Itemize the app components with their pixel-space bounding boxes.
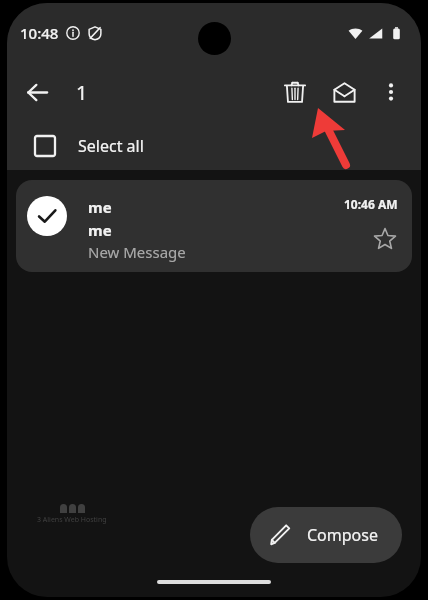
button[interactable]: Star <box>372 226 398 252</box>
staticText: New Message <box>88 242 186 262</box>
button[interactable]: Selected <box>16 180 412 272</box>
staticText: 10:46 AM <box>344 196 398 212</box>
staticText: 10:48 <box>20 23 59 43</box>
button[interactable]: Selected <box>27 196 67 236</box>
staticText: 3 Aliens Web Hosting <box>37 515 107 525</box>
button[interactable]: Select all <box>7 121 421 170</box>
staticText: me <box>88 220 112 240</box>
staticText: Compose <box>307 524 378 546</box>
button[interactable]: Compose <box>250 507 402 563</box>
staticText: 1 <box>76 79 88 106</box>
button[interactable]: Mark as read <box>322 70 366 114</box>
button[interactable]: Delete <box>273 70 317 114</box>
button[interactable]: More options <box>369 70 413 114</box>
staticText: me <box>88 197 112 217</box>
button[interactable]: Back <box>17 72 57 112</box>
staticText: Select all <box>78 135 144 157</box>
